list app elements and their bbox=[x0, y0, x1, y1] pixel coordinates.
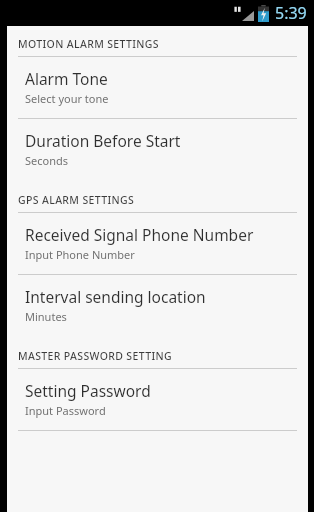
staticText: Alarm Tone bbox=[25, 68, 108, 89]
staticText: Select your tone bbox=[25, 91, 109, 106]
staticText: MOTION ALARM SETTINGS bbox=[18, 37, 159, 51]
staticText: MASTER PASSWORD SETTING bbox=[18, 349, 172, 363]
staticText: Input Password bbox=[25, 403, 106, 418]
other: Battery charging bbox=[258, 5, 269, 22]
staticText: Setting Password bbox=[25, 380, 151, 401]
button[interactable]: Duration Before Start bbox=[7, 119, 308, 180]
staticText: Interval sending location bbox=[25, 286, 206, 307]
staticText: 5:39 bbox=[275, 2, 307, 24]
button[interactable]: Received Signal Phone Number bbox=[7, 213, 308, 274]
button[interactable]: Interval sending location bbox=[7, 275, 308, 336]
button[interactable]: Setting Password bbox=[7, 369, 308, 430]
other: 3G signal bbox=[234, 6, 254, 21]
staticText: Seconds bbox=[25, 153, 69, 168]
button[interactable]: Alarm Tone bbox=[7, 57, 308, 118]
staticText: Received Signal Phone Number bbox=[25, 224, 254, 245]
staticText: Duration Before Start bbox=[25, 130, 181, 151]
staticText: Minutes bbox=[25, 309, 67, 324]
staticText: GPS ALARM SETTINGS bbox=[18, 193, 135, 207]
staticText: Input Phone Number bbox=[25, 247, 135, 262]
